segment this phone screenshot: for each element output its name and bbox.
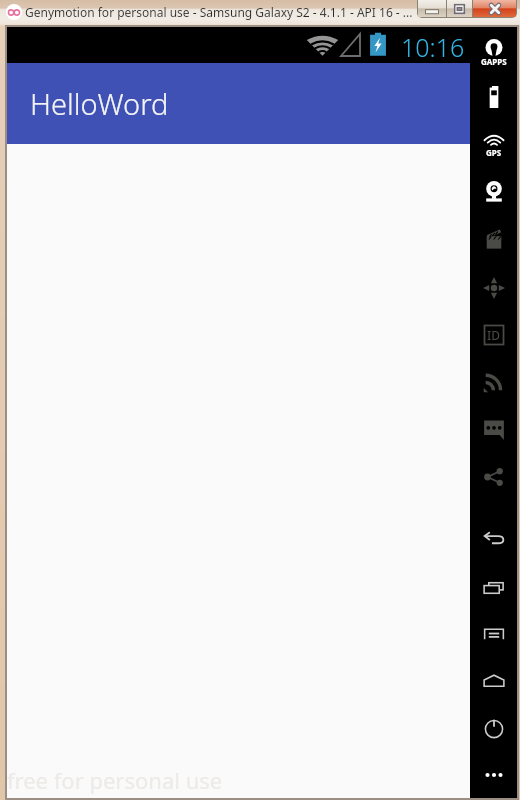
staticText: HelloWord bbox=[30, 84, 169, 123]
button[interactable]: Battery bbox=[470, 74, 517, 120]
button[interactable]: Camera bbox=[470, 169, 517, 215]
button[interactable]: Back bbox=[470, 515, 517, 561]
button[interactable]: Minimize bbox=[418, 0, 446, 17]
staticText: ID bbox=[487, 327, 501, 343]
button[interactable]: Dpad bbox=[470, 265, 517, 311]
button[interactable]: Close bbox=[473, 0, 516, 17]
button[interactable]: Recents bbox=[470, 565, 517, 611]
staticText: GPS bbox=[486, 147, 502, 158]
staticText: free for personal use bbox=[7, 765, 223, 795]
button[interactable]: GPS bbox=[470, 122, 517, 168]
button[interactable]: Maximize bbox=[447, 0, 472, 17]
staticText: GAPPS bbox=[481, 56, 507, 67]
button[interactable]: Home bbox=[470, 658, 517, 704]
button[interactable]: Power bbox=[470, 705, 517, 751]
button[interactable]: Video recording bbox=[470, 217, 517, 263]
button[interactable]: SMS bbox=[470, 407, 517, 453]
staticText: Genymotion for personal use - Samsung Ga… bbox=[25, 4, 413, 20]
button[interactable]: Network bbox=[470, 359, 517, 405]
button[interactable]: Identifiers bbox=[470, 312, 517, 358]
other: Genymotion bbox=[6, 4, 22, 20]
button[interactable]: More bbox=[470, 752, 517, 798]
button[interactable]: GAPPS bbox=[470, 29, 517, 75]
button[interactable]: Menu bbox=[470, 611, 517, 657]
button[interactable]: Share bbox=[470, 454, 517, 500]
staticText: 10:16 bbox=[401, 30, 465, 64]
